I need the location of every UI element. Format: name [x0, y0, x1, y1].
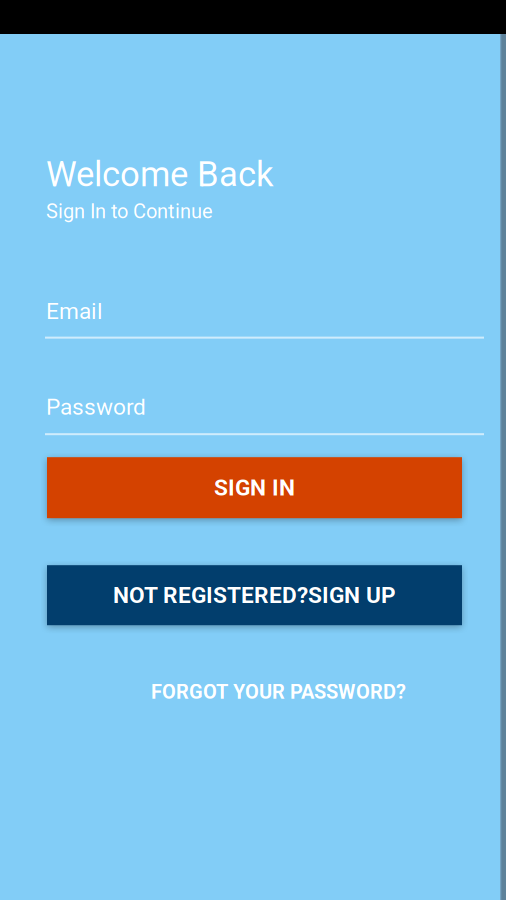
button[interactable]: SIGN IN	[47, 457, 462, 518]
button[interactable]: Email	[0, 298, 506, 339]
button[interactable]: NOT REGISTERED?SIGN UP	[47, 565, 462, 625]
staticText: FORGOT YOUR PASSWORD?	[151, 680, 406, 704]
staticText: NOT REGISTERED?SIGN UP	[113, 582, 396, 608]
staticText: Email	[46, 298, 103, 325]
staticText: Welcome Back	[46, 154, 274, 195]
button[interactable]: Password	[0, 394, 506, 435]
staticText: Password	[46, 394, 146, 420]
button[interactable]: FORGOT YOUR PASSWORD?	[51, 680, 506, 704]
staticText: Sign In to Continue	[46, 200, 213, 223]
staticText: SIGN IN	[214, 474, 295, 501]
